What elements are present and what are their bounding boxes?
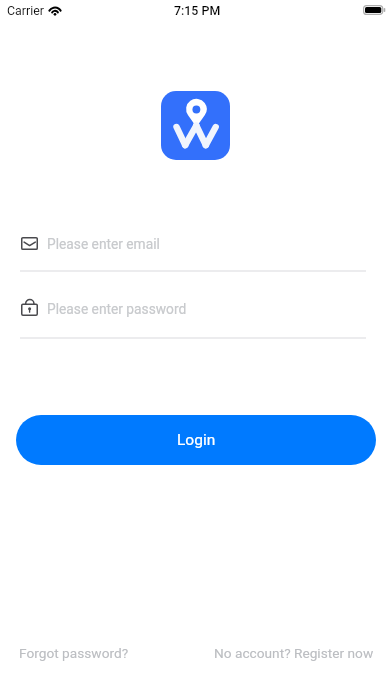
- button[interactable]: Forgot password?: [19, 645, 129, 661]
- staticText: Login: [177, 431, 216, 449]
- staticText: 7:15 PM: [174, 3, 221, 18]
- button[interactable]: Login: [16, 415, 376, 465]
- button[interactable]: No account? Register now: [214, 645, 374, 661]
- button[interactable]: Please enter email: [0, 228, 392, 276]
- staticText: Please enter password: [47, 301, 187, 317]
- staticText: Forgot password?: [19, 645, 129, 661]
- staticText: Please enter email: [47, 236, 160, 252]
- staticText: No account? Register now: [214, 645, 374, 661]
- button[interactable]: Please enter password: [0, 295, 392, 343]
- staticText: Carrier: [7, 3, 44, 18]
